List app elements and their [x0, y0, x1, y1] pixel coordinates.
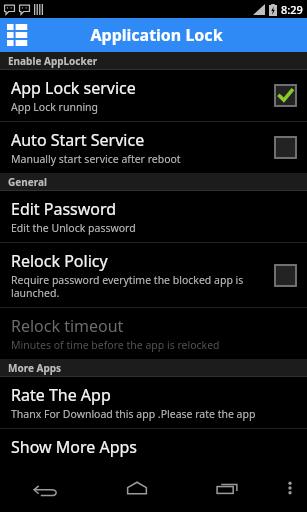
staticText: Relock timeout: [11, 315, 124, 337]
staticText: Enable AppLocker: [8, 54, 98, 68]
staticText: Minutes of time before the app is relock…: [11, 338, 220, 352]
staticText: Rate The App: [11, 384, 111, 406]
staticText: Manually start service after reboot: [11, 152, 181, 166]
button[interactable]: Home: [91, 464, 182, 512]
button[interactable]: Checked: [274, 84, 297, 107]
staticText: More Apps: [8, 361, 62, 375]
staticText: General: [8, 175, 47, 189]
button[interactable]: Rate The App: [0, 377, 307, 428]
button[interactable]: Unchecked: [274, 136, 297, 159]
button[interactable]: Unchecked: [274, 264, 297, 287]
button[interactable]: Recents: [182, 464, 273, 512]
staticText: Thanx For Download this app .Please rate…: [11, 407, 256, 421]
button[interactable]: Relock timeout: [0, 308, 307, 359]
button[interactable]: App Lock service: [0, 70, 307, 121]
staticText: App Lock running: [11, 100, 99, 114]
button[interactable]: Back: [0, 464, 91, 512]
button[interactable]: Show More Apps: [0, 429, 307, 464]
staticText: App Lock service: [11, 77, 136, 99]
button[interactable]: More options: [273, 464, 307, 512]
staticText: Require password everytime the blocked a…: [11, 273, 266, 300]
staticText: 8:29: [281, 2, 303, 17]
button[interactable]: Auto Start Service: [0, 122, 307, 173]
staticText: Auto Start Service: [11, 129, 145, 151]
button[interactable]: App icon: [5, 22, 31, 48]
staticText: Edit Password: [11, 198, 117, 220]
button[interactable]: Edit Password: [0, 191, 307, 242]
button[interactable]: Relock Policy: [0, 243, 307, 307]
staticText: Edit the Unlock password: [11, 221, 136, 235]
staticText: Relock Policy: [11, 250, 108, 272]
staticText: Application Lock: [90, 24, 223, 46]
staticText: Show More Apps: [11, 436, 138, 457]
